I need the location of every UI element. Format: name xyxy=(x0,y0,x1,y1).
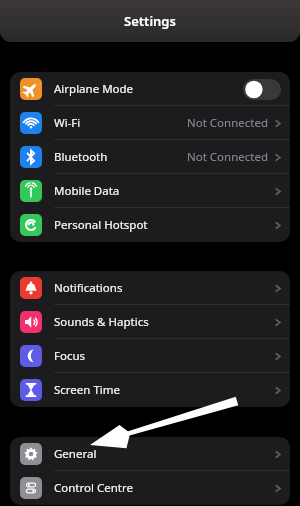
staticText: Personal Hotspot xyxy=(54,217,148,233)
staticText: General xyxy=(54,446,97,462)
staticText: Wi-Fi xyxy=(54,115,81,131)
staticText: Bluetooth xyxy=(54,149,108,165)
staticText: Control Centre xyxy=(54,480,133,496)
button[interactable]: Sounds & Haptics xyxy=(10,305,290,339)
staticText: Not Connected xyxy=(187,149,268,165)
staticText: Settings xyxy=(124,12,176,30)
staticText: Mobile Data xyxy=(54,183,120,199)
button[interactable]: Notifications xyxy=(10,271,290,305)
button[interactable]: Airplane Mode xyxy=(10,72,290,106)
button[interactable]: Wi-Fi xyxy=(10,106,290,140)
button[interactable]: Screen Time xyxy=(10,373,290,407)
button[interactable]: General xyxy=(10,437,290,471)
button[interactable]: Bluetooth xyxy=(10,140,290,174)
button[interactable]: Focus xyxy=(10,339,290,373)
button[interactable]: Personal Hotspot xyxy=(10,208,290,242)
button[interactable]: Airplane Mode toggle, off xyxy=(243,79,281,100)
button[interactable]: Control Centre xyxy=(10,471,290,505)
staticText: Notifications xyxy=(54,280,123,296)
staticText: Sounds & Haptics xyxy=(54,314,149,330)
staticText: Screen Time xyxy=(54,382,121,398)
staticText: Focus xyxy=(54,348,86,364)
button[interactable]: Mobile Data xyxy=(10,174,290,208)
staticText: Not Connected xyxy=(187,115,268,131)
staticText: Airplane Mode xyxy=(54,81,134,97)
